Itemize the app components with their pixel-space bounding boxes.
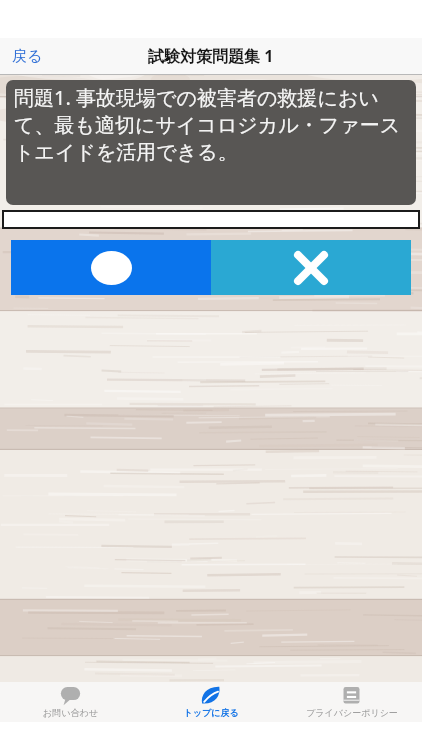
staticText: 試験対策問題集 1 — [148, 45, 274, 67]
button[interactable]: ○ 正しい — [11, 240, 211, 295]
button[interactable]: プライバシーポリシー — [281, 682, 422, 722]
staticText: お問い合わせ — [43, 707, 98, 718]
button[interactable]: × 誤り — [211, 240, 411, 295]
button[interactable]: 解答入力欄 — [2, 210, 420, 229]
button[interactable]: お問い合わせ — [0, 682, 140, 722]
staticText: 問題1. 事故現場での被害者の救援において、最も適切にサイコロジカル・ファースト… — [14, 84, 411, 165]
button[interactable]: 戻る — [0, 40, 55, 73]
staticText: プライバシーポリシー — [306, 707, 398, 718]
staticText: トップに戻る — [183, 707, 239, 718]
button[interactable]: トップに戻る — [140, 682, 281, 722]
staticText: 戻る — [12, 47, 43, 66]
